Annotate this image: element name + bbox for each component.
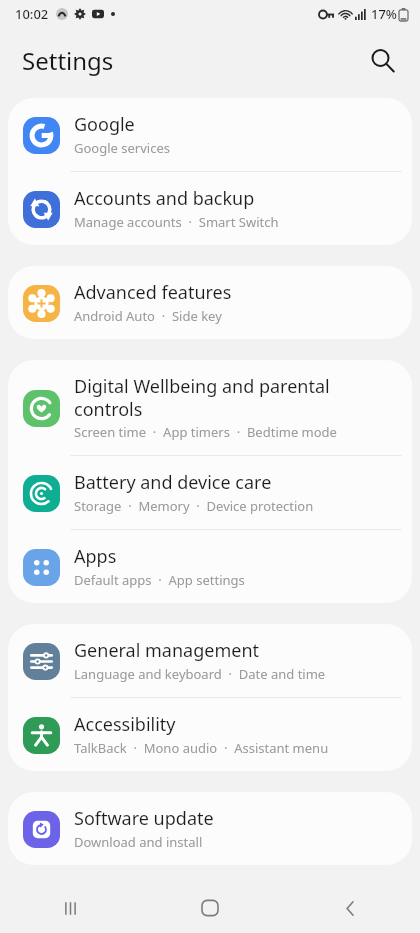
staticText: 10:02 <box>15 5 49 23</box>
staticText: Advanced features <box>74 280 232 305</box>
button[interactable]: Recent apps <box>0 883 140 933</box>
staticText: Language and keyboard · Date and time <box>74 665 326 683</box>
button[interactable]: Google <box>8 98 412 171</box>
staticText: Accounts and backup <box>74 186 255 211</box>
button[interactable]: General management <box>8 624 412 697</box>
staticText: Screen time · App timers · Bedtime mode <box>74 423 337 441</box>
staticText: Download and install <box>74 833 203 851</box>
button[interactable]: Advanced features <box>8 266 412 339</box>
staticText: Software update <box>74 806 214 831</box>
button[interactable]: Software update <box>8 792 412 865</box>
button[interactable]: Apps <box>8 530 412 603</box>
staticText: Default apps · App settings <box>74 571 245 589</box>
button[interactable]: Battery and device care <box>8 456 412 529</box>
button[interactable]: Home <box>140 883 280 933</box>
staticText: Digital Wellbeing and parental controls <box>74 374 398 421</box>
staticText: Accessibility <box>74 712 176 737</box>
button[interactable]: Search <box>360 38 404 82</box>
button[interactable]: Accessibility <box>8 698 412 771</box>
staticText: Android Auto · Side key <box>74 307 222 325</box>
button[interactable]: Accounts and backup <box>8 172 412 245</box>
button[interactable]: Back <box>280 883 420 933</box>
staticText: Storage · Memory · Device protection <box>74 497 314 515</box>
staticText: Settings <box>22 44 114 77</box>
staticText: Manage accounts · Smart Switch <box>74 213 279 231</box>
staticText: Apps <box>74 544 117 569</box>
staticText: TalkBack · Mono audio · Assistant menu <box>74 739 329 757</box>
button[interactable]: Digital Wellbeing and parental controls <box>8 360 412 455</box>
staticText: 17% <box>371 5 397 23</box>
staticText: Google services <box>74 139 170 157</box>
staticText: General management <box>74 638 260 663</box>
staticText: Google <box>74 112 135 137</box>
staticText: Battery and device care <box>74 470 272 495</box>
